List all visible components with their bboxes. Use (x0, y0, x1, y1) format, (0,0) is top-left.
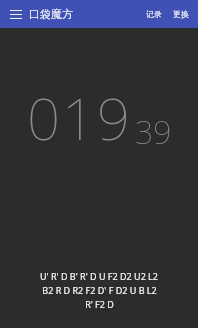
staticText: 39 (135, 110, 172, 154)
button[interactable]: Open navigation menu (7, 5, 25, 23)
button[interactable]: 019 (0, 78, 198, 157)
staticText: B2 R D R2 F2 D' F D2 U B L2 (42, 284, 157, 296)
button[interactable]: 更换 (169, 4, 193, 24)
staticText: 019 (27, 78, 133, 157)
staticText: R' F2 D (85, 298, 114, 310)
staticText: 口袋魔方 (29, 7, 73, 21)
staticText: 更换 (173, 9, 189, 19)
staticText: U' R' D B' R' D U F2 D2 U2 L2 (40, 270, 158, 282)
button[interactable]: U' R' D B' R' D U F2 D2 U2 L2 (0, 270, 198, 310)
button[interactable]: 记录 (142, 4, 166, 24)
staticText: 记录 (146, 9, 162, 19)
